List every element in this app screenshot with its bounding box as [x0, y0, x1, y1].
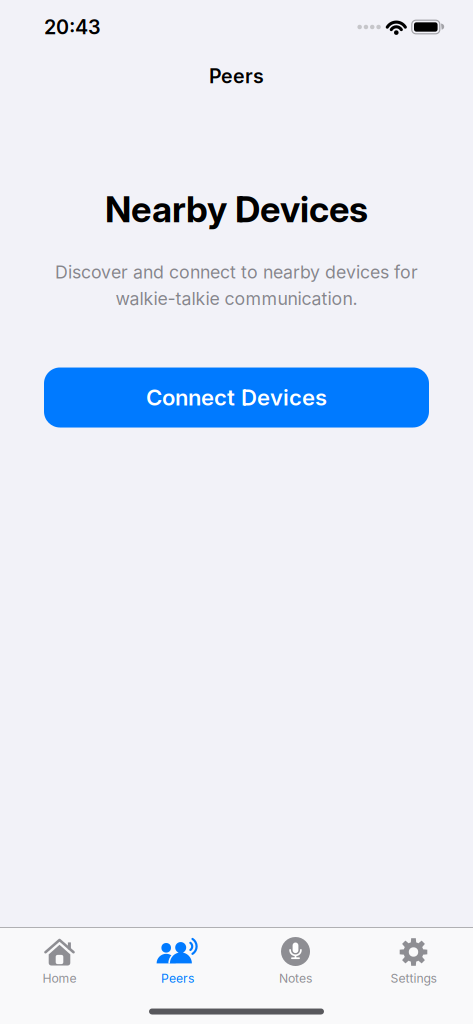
- staticText: Connect Devices: [146, 384, 327, 411]
- staticText: Nearby Devices: [105, 188, 368, 230]
- staticText: Notes: [279, 971, 312, 985]
- staticText: Settings: [390, 971, 436, 985]
- button[interactable]: Connect Devices: [0, 367, 473, 427]
- button[interactable]: Notes: [236, 935, 354, 985]
- staticText: Discover and connect to nearby devices f…: [55, 262, 418, 283]
- staticText: walkie-talkie communication.: [115, 288, 357, 309]
- staticText: Home: [42, 971, 76, 985]
- staticText: Peers: [209, 64, 264, 87]
- button[interactable]: Home: [0, 935, 118, 985]
- button[interactable]: Settings: [354, 935, 472, 985]
- button[interactable]: Peers: [118, 935, 236, 985]
- staticText: 20:43: [44, 15, 101, 39]
- staticText: Peers: [161, 971, 194, 985]
